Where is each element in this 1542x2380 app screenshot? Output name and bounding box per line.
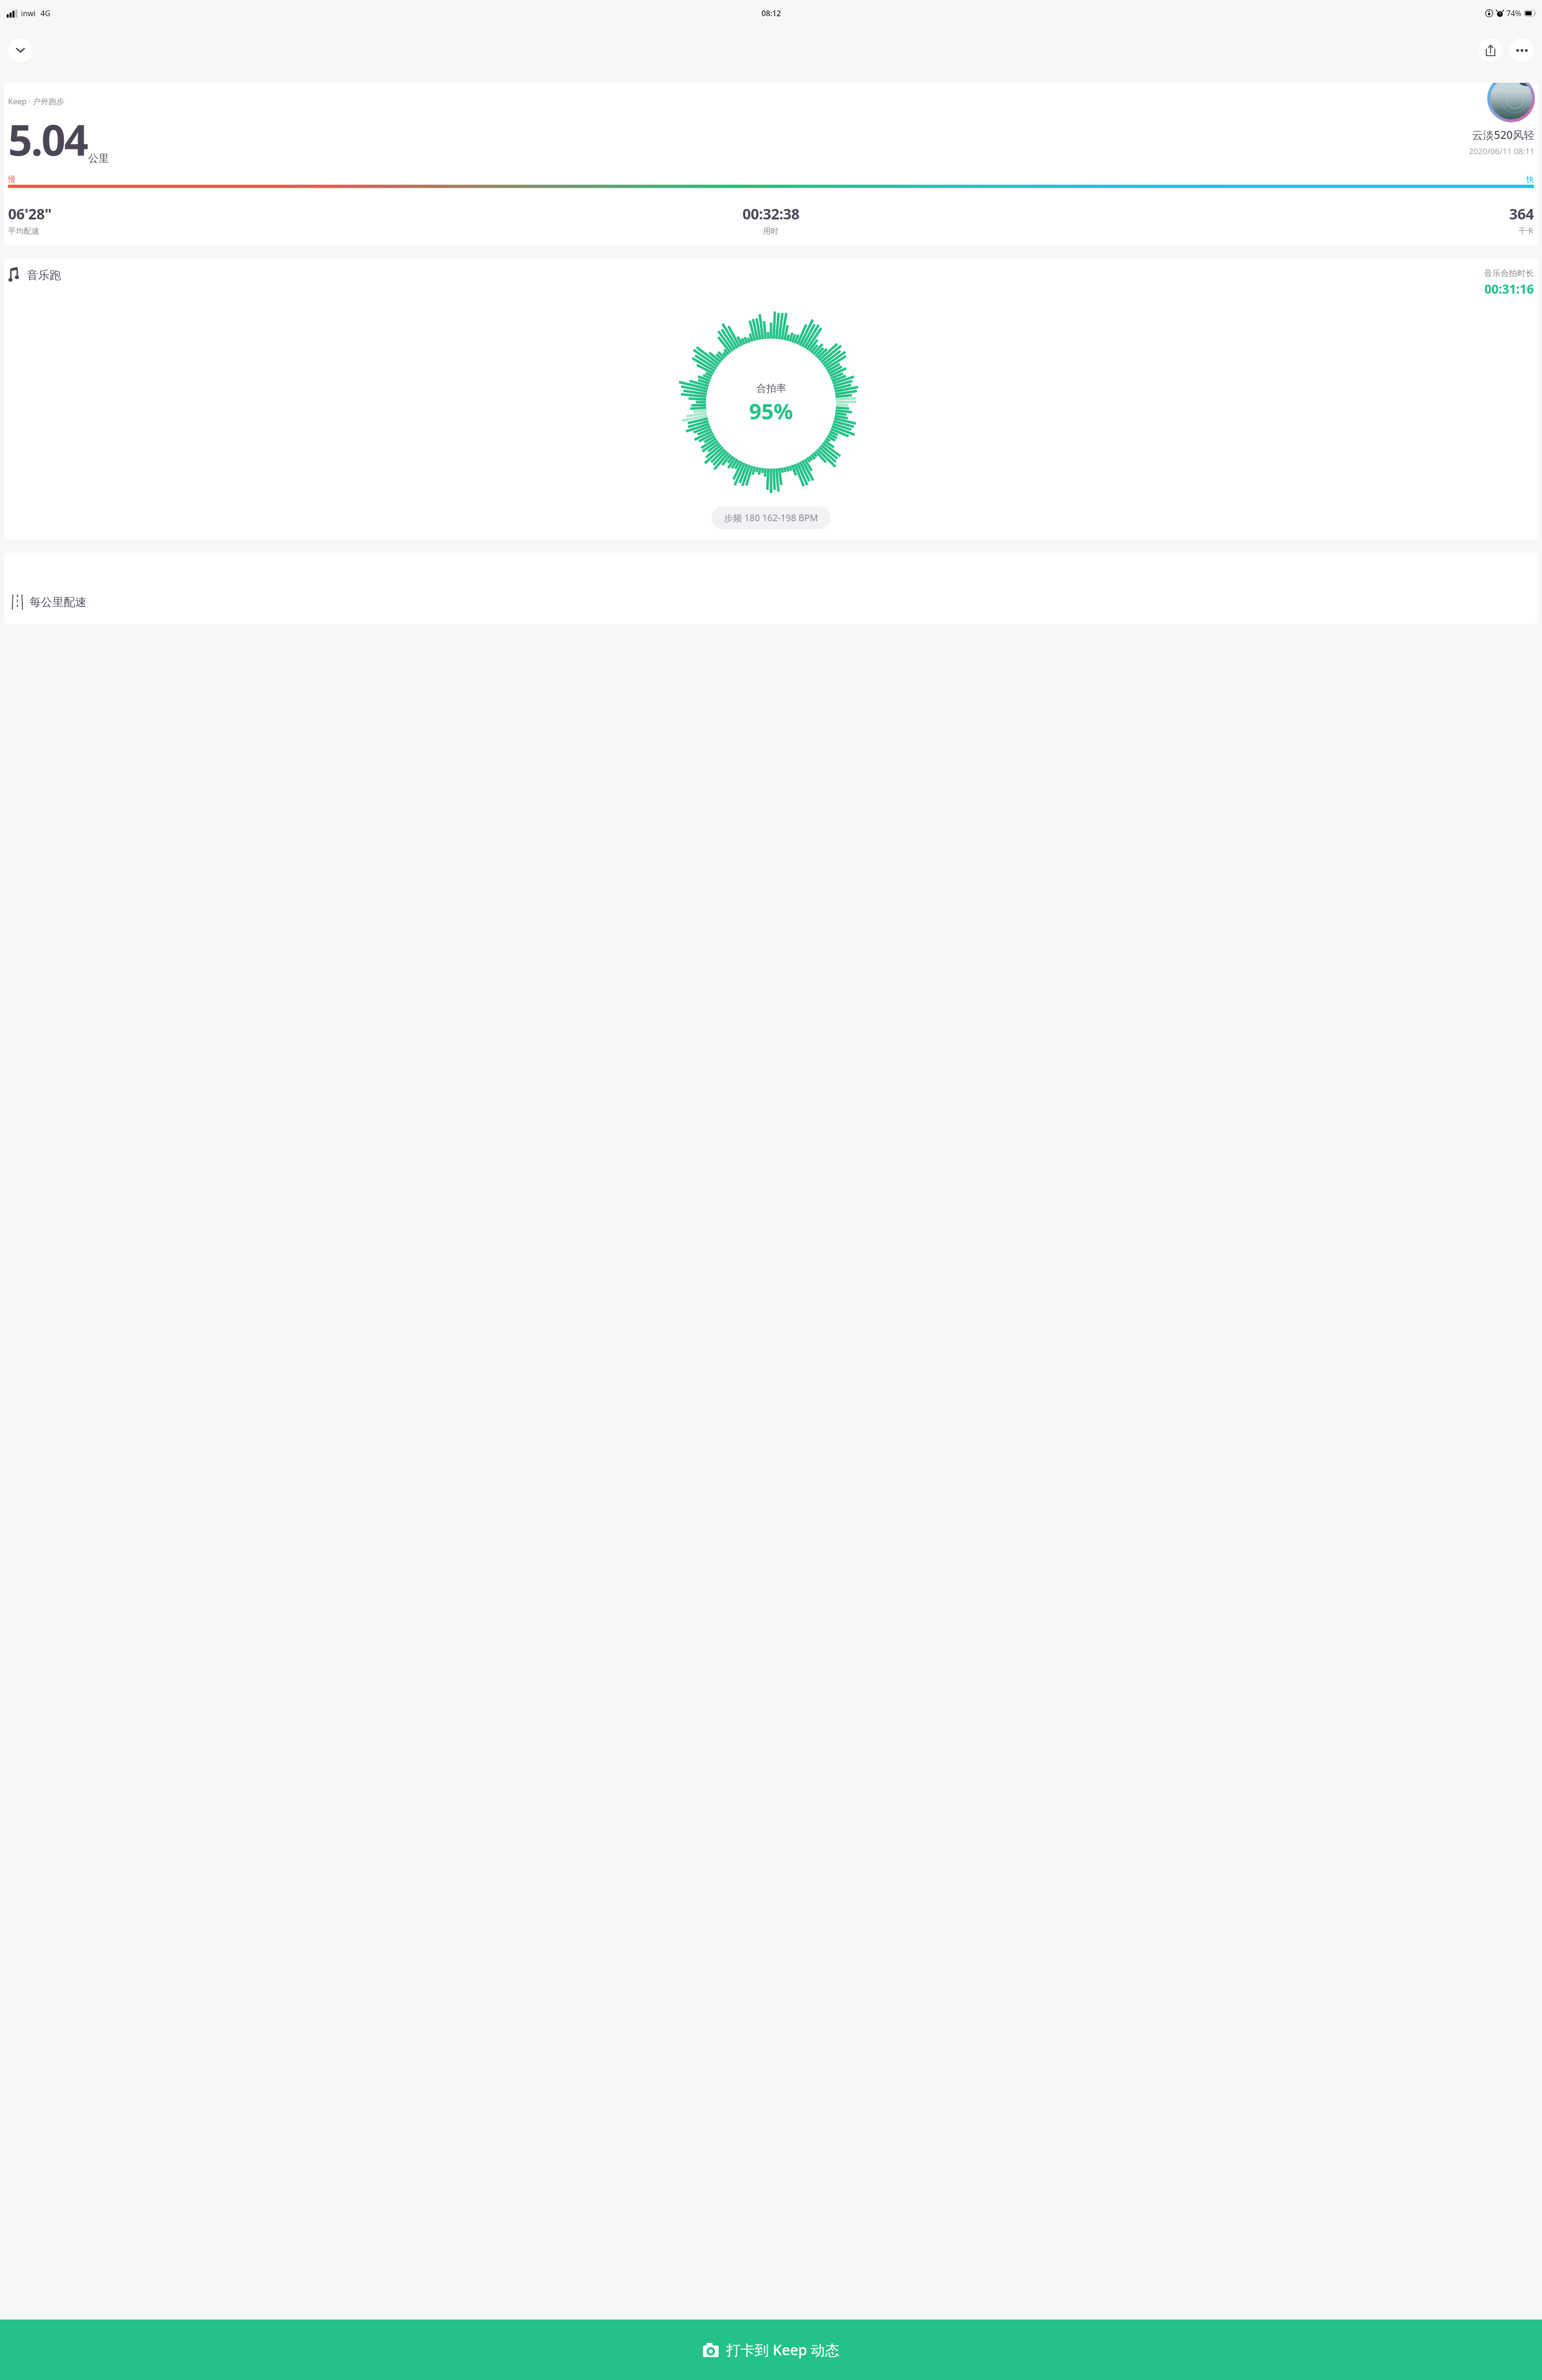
button[interactable]: 音乐跑 — [4, 258, 1538, 540]
staticText: 00:32:38 — [742, 204, 800, 224]
button[interactable]: 打卡到 Keep 动态 — [0, 2320, 1542, 2380]
staticText: 00:31:16 — [1484, 280, 1534, 297]
staticText: 千卡 — [1518, 226, 1534, 236]
staticText: 74% — [1506, 8, 1522, 19]
button[interactable]: 每公里配速 — [4, 553, 1538, 624]
button[interactable]: 步频 180 162-198 BPM — [712, 506, 830, 529]
staticText: 用时 — [763, 226, 779, 236]
button[interactable]: Share — [1478, 38, 1502, 62]
staticText: 364 — [1509, 204, 1534, 224]
staticText: 快 — [1526, 175, 1534, 184]
staticText: 4G — [40, 8, 50, 19]
staticText: Keep · 户外跑步 — [8, 96, 64, 107]
staticText: 06'28" — [8, 204, 52, 224]
staticText: 2020/06/11 08:11 — [1469, 146, 1535, 157]
staticText: inwi — [21, 8, 36, 19]
button[interactable]: More options — [1510, 38, 1534, 62]
button[interactable]: Keep · 户外跑步 — [4, 83, 1538, 246]
staticText: 步频 180 162-198 BPM — [724, 512, 818, 524]
staticText: 5.04 — [8, 110, 87, 168]
staticText: 音乐合拍时长 — [1484, 268, 1534, 278]
staticText: 打卡到 Keep 动态 — [726, 2340, 840, 2360]
button[interactable]: Collapse — [8, 38, 32, 62]
staticText: 每公里配速 — [30, 595, 87, 609]
staticText: 08:12 — [761, 8, 781, 19]
staticText: 音乐跑 — [27, 268, 61, 282]
staticText: 公里 — [88, 152, 109, 165]
staticText: 合拍率 — [756, 382, 786, 395]
staticText: 慢 — [8, 175, 16, 184]
staticText: 平均配速 — [8, 226, 40, 236]
staticText: 云淡520风轻 — [1472, 127, 1535, 142]
staticText: 95% — [749, 397, 793, 426]
